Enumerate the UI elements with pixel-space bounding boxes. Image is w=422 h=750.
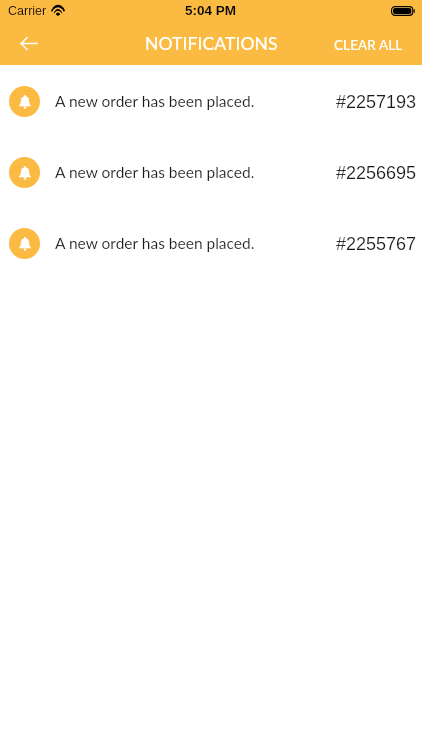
staticText: A new order has been placed. [55, 234, 255, 253]
staticText: A new order has been placed. [55, 163, 255, 182]
staticText: #2255767 [336, 234, 417, 254]
staticText: 5:04 PM [185, 3, 237, 18]
staticText: CLEAR ALL [334, 37, 403, 53]
staticText: NOTIFICATIONS [145, 33, 278, 54]
button[interactable]: A new order has been placed. [0, 137, 422, 208]
button[interactable]: A new order has been placed. [0, 208, 422, 279]
staticText: #2257193 [336, 92, 417, 112]
button[interactable]: A new order has been placed. [0, 66, 422, 137]
staticText: Carrier [8, 4, 47, 18]
button[interactable]: CLEAR ALL [315, 31, 422, 59]
staticText: A new order has been placed. [55, 92, 255, 111]
button[interactable]: Back [16, 30, 42, 56]
staticText: #2256695 [336, 163, 417, 183]
